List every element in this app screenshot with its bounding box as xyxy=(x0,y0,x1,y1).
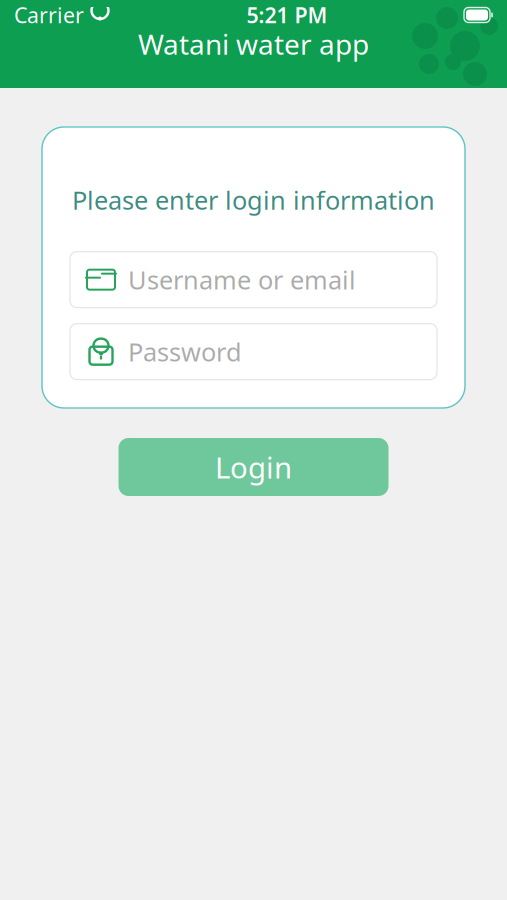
staticText: Username or email xyxy=(128,263,356,296)
button[interactable]: Login xyxy=(118,438,388,496)
staticText: Password xyxy=(128,335,242,368)
staticText: Watani water app xyxy=(138,25,369,63)
staticText: Login xyxy=(215,447,292,486)
staticText: 5:21 PM xyxy=(246,1,327,29)
button[interactable]: Username or email xyxy=(70,252,437,308)
button[interactable]: Password xyxy=(70,324,437,380)
staticText: Carrier xyxy=(14,1,84,29)
staticText: Please enter login information xyxy=(72,183,435,217)
